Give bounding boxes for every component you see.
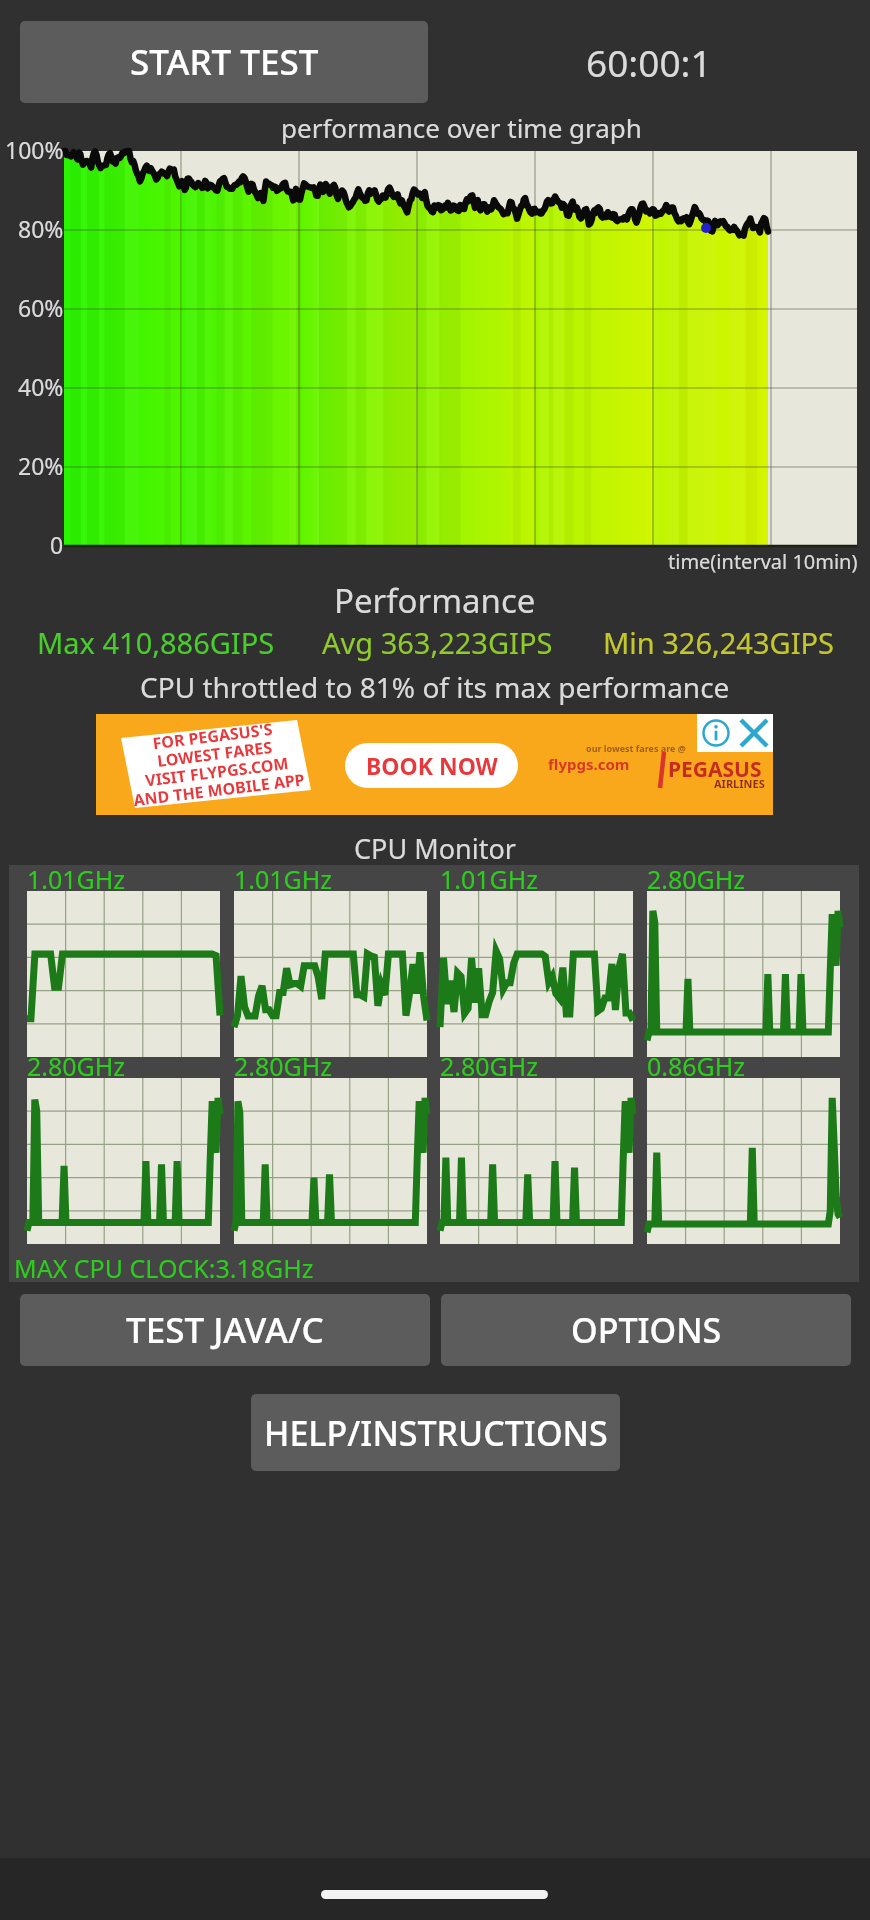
button[interactable]: FOR PEGASUS'S LOWEST FARES VISIT FLYPGS.… — [96, 714, 773, 815]
staticText: 100% — [5, 134, 64, 165]
staticText: START TEST — [130, 38, 319, 86]
staticText: PEGASUS — [668, 755, 762, 784]
staticText: Avg 363,223GIPS — [322, 623, 553, 662]
staticText: 0.86GHz — [647, 1049, 746, 1083]
staticText: 1.01GHz — [27, 862, 126, 896]
staticText: 60:00:1 — [586, 37, 712, 87]
button[interactable]: HELP/INSTRUCTIONS — [251, 1394, 620, 1471]
staticText: 0 — [50, 529, 64, 560]
staticText: OPTIONS — [571, 1307, 722, 1353]
staticText: performance over time graph — [281, 110, 642, 144]
staticText: CPU Monitor — [354, 830, 516, 866]
staticText: 1.01GHz — [440, 862, 539, 896]
button[interactable]: OPTIONS — [441, 1294, 851, 1366]
button[interactable]: TEST JAVA/C — [20, 1294, 430, 1366]
button[interactable]: BOOK NOW — [345, 743, 518, 788]
staticText: time(interval 10min) — [668, 548, 858, 575]
staticText: MAX CPU CLOCK:3.18GHz — [14, 1251, 314, 1285]
staticText: 2.80GHz — [27, 1049, 126, 1083]
staticText: 2.80GHz — [647, 862, 746, 896]
staticText: our lowest fares are @ — [586, 742, 686, 754]
staticText: FOR PEGASUS'S LOWEST FARES VISIT FLYPGS.… — [125, 715, 306, 807]
staticText: Performance — [334, 578, 536, 622]
staticText: 20% — [18, 450, 64, 481]
staticText: TEST JAVA/C — [126, 1306, 324, 1354]
staticText: 2.80GHz — [234, 1049, 333, 1083]
staticText: BOOK NOW — [366, 750, 498, 781]
staticText: 2.80GHz — [440, 1049, 539, 1083]
staticText: CPU throttled to 81% of its max performa… — [140, 668, 730, 706]
staticText: flypgs.com — [548, 754, 630, 774]
button[interactable]: Ad info — [697, 714, 735, 752]
staticText: Min 326,243GIPS — [603, 623, 834, 662]
staticText: 80% — [18, 213, 64, 244]
button[interactable]: START TEST — [20, 21, 428, 103]
staticText: 60% — [18, 292, 64, 323]
staticText: 40% — [18, 371, 64, 402]
button[interactable]: Close ad — [735, 714, 773, 752]
staticText: 1.01GHz — [234, 862, 333, 896]
staticText: AIRLINES — [714, 776, 765, 791]
staticText: Max 410,886GIPS — [37, 623, 275, 662]
staticText: HELP/INSTRUCTIONS — [264, 1410, 608, 1456]
